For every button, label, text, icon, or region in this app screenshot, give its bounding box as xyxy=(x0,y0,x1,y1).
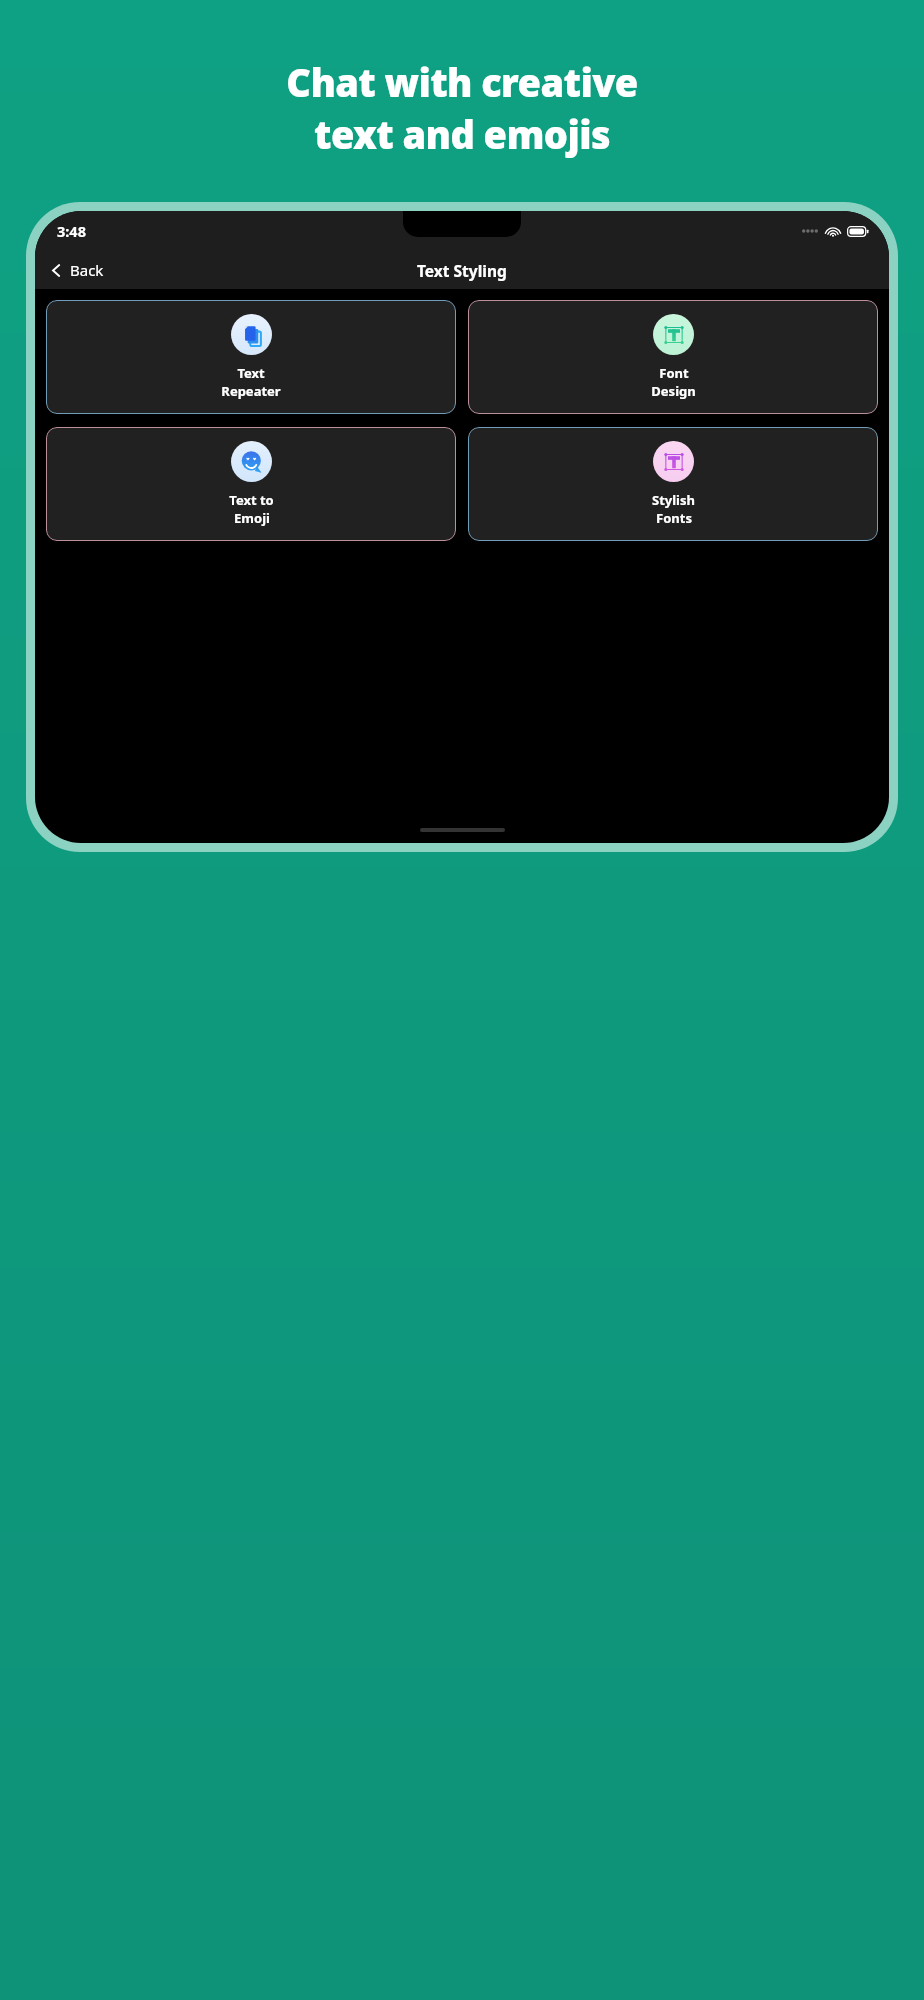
staticText: Text to xyxy=(229,491,274,509)
button[interactable]: Back xyxy=(35,254,116,286)
button[interactable]: Text to xyxy=(46,427,456,541)
staticText: Text Styling xyxy=(417,260,507,281)
button[interactable]: Stylish xyxy=(468,427,878,541)
staticText: Repeater xyxy=(221,382,281,400)
button[interactable]: Text xyxy=(46,300,456,414)
staticText: Design xyxy=(651,382,696,400)
staticText: text and emojis xyxy=(314,108,610,160)
staticText: 3:48 xyxy=(57,221,86,241)
staticText: Font xyxy=(659,364,689,382)
staticText: Text xyxy=(237,364,265,382)
staticText: Stylish xyxy=(652,491,695,509)
staticText: Back xyxy=(70,260,104,280)
button[interactable]: Font xyxy=(468,300,878,414)
staticText: Chat with creative xyxy=(286,56,638,108)
staticText: Fonts xyxy=(656,509,692,527)
staticText: Emoji xyxy=(234,509,270,527)
